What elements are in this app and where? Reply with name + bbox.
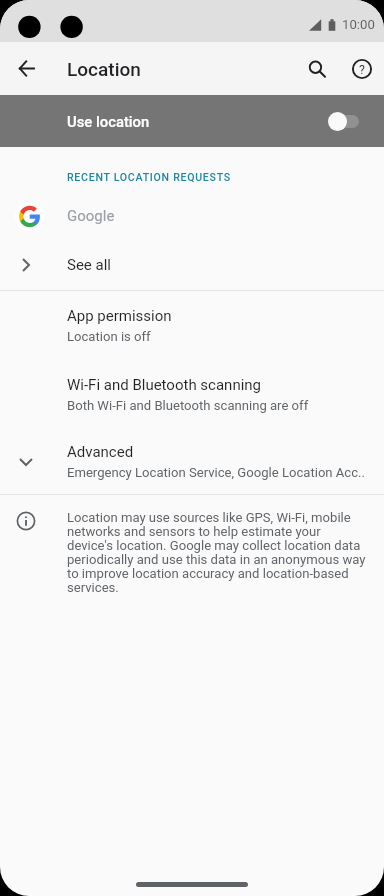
button[interactable]: See all bbox=[0, 239, 384, 290]
button[interactable]: Help bbox=[345, 52, 378, 85]
staticText: Advanced bbox=[67, 443, 134, 461]
staticText: Location is off bbox=[67, 329, 151, 344]
staticText: Wi-Fi and Bluetooth scanning bbox=[67, 376, 262, 394]
button[interactable]: Use location bbox=[0, 95, 384, 147]
staticText: Both Wi-Fi and Bluetooth scanning are of… bbox=[67, 398, 309, 413]
staticText: Location bbox=[67, 58, 141, 80]
staticText: 10:00 bbox=[342, 17, 375, 32]
staticText: Use location bbox=[67, 113, 150, 130]
staticText: See all bbox=[67, 256, 111, 274]
staticText: RECENT LOCATION REQUESTS bbox=[67, 171, 231, 183]
button[interactable]: Wi-Fi and Bluetooth scanning bbox=[0, 360, 384, 429]
staticText: Emergency Location Service, Google Locat… bbox=[67, 465, 365, 480]
button[interactable]: Search bbox=[300, 52, 333, 85]
staticText: Google bbox=[67, 207, 115, 225]
staticText: Location may use sources like GPS, Wi-Fi… bbox=[67, 510, 367, 596]
button[interactable]: Google bbox=[0, 193, 384, 239]
button[interactable]: App permission bbox=[0, 291, 384, 360]
button[interactable]: Back bbox=[9, 51, 44, 86]
staticText: ? bbox=[359, 62, 365, 77]
button[interactable]: Advanced bbox=[0, 429, 384, 494]
staticText: App permission bbox=[67, 307, 172, 325]
